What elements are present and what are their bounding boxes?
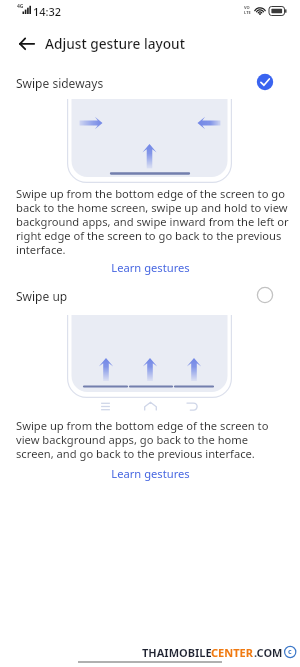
staticText: THAIMOBILE	[142, 645, 212, 660]
staticText: Learn gestures	[111, 260, 190, 275]
staticText: Swipe sideways	[16, 75, 104, 91]
button[interactable]: Swipe sideways option	[0, 70, 300, 95]
button[interactable]: Swipe up option	[0, 283, 300, 308]
staticText: right edge of the screen to go back to t…	[16, 228, 282, 243]
button[interactable]: Back	[13, 31, 41, 59]
staticText: view background apps, go back to the hom…	[16, 432, 249, 447]
staticText: screen, and go back to the previous inte…	[16, 446, 255, 461]
staticText: .COM	[254, 645, 283, 660]
staticText: Swipe up from the bottom edge of the scr…	[16, 186, 285, 201]
staticText: back to the home screen, swipe up and ho…	[16, 200, 288, 215]
staticText: 14:32	[33, 4, 62, 19]
staticText: LTE	[244, 10, 251, 15]
staticText: Adjust gesture layout	[45, 34, 185, 53]
staticText: Learn gestures	[111, 466, 190, 481]
staticText: CENTER	[211, 645, 253, 660]
button[interactable]: Learn gestures	[108, 464, 192, 482]
staticText: 4G	[17, 3, 24, 10]
button[interactable]: Learn gestures	[108, 258, 192, 276]
staticText: VO	[244, 5, 250, 10]
staticText: Swipe up from the bottom edge of the scr…	[16, 418, 269, 433]
staticText: background apps, and swipe inward from t…	[16, 214, 289, 229]
staticText: interface.	[16, 242, 66, 257]
staticText: c	[288, 647, 292, 657]
staticText: Swipe up	[16, 288, 68, 304]
